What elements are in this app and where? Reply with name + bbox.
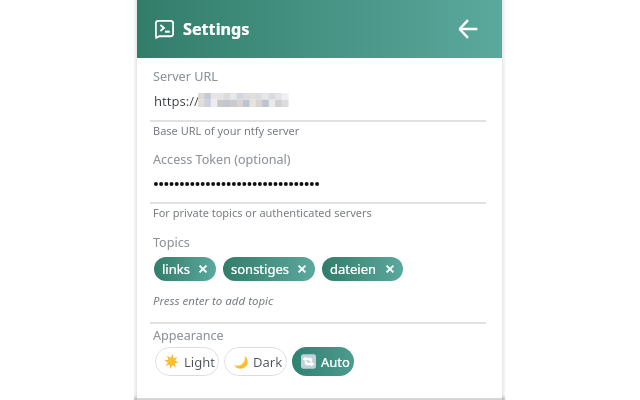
staticText: sonstiges [231,260,289,278]
button[interactable]: Auto [292,347,354,376]
staticText: Light [184,353,215,371]
staticText: Appearance [153,327,224,344]
staticText: For private topics or authenticated serv… [153,205,372,220]
button[interactable]: links [154,257,216,281]
button[interactable]: Back [451,12,485,46]
staticText: Access Token (optional) [153,151,291,168]
staticText: Topics [153,234,190,251]
button[interactable]: Server URL field [150,85,486,121]
staticText: Settings [183,18,250,40]
button[interactable]: Dark [224,347,287,376]
staticText: Auto [321,353,350,371]
staticText: Base URL of your ntfy server [153,123,300,138]
button[interactable]: sonstiges [223,257,315,281]
staticText: https:// [154,92,199,110]
button[interactable]: Light [155,347,219,376]
staticText: Press enter to add topic [153,293,274,309]
button[interactable]: dateien [322,257,403,281]
staticText: Server URL [153,68,218,85]
staticText: Dark [253,353,283,371]
staticText: links [162,260,190,278]
staticText: dateien [330,260,377,278]
button[interactable]: Access token field [150,169,486,202]
